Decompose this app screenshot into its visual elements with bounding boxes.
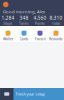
button[interactable]: Rewards [48,31,64,41]
staticText: Cards [19,37,28,41]
button[interactable]: 4,560 [32,14,48,26]
staticText: Wallet [3,37,13,41]
staticText: Finish your setup [15,91,44,97]
staticText: Steps [3,21,12,26]
button[interactable]: Transit [32,31,48,41]
staticText: Good morning, Alex [3,9,45,14]
staticText: Transit [34,37,45,41]
staticText: Total [52,21,60,26]
staticText: 348 [19,14,28,21]
staticText: Tasks [19,21,29,26]
button[interactable]: Wallet [0,31,16,41]
staticText: 4,560 [33,14,46,21]
button[interactable]: 1,284 [0,14,16,26]
button[interactable]: Cards [16,31,32,41]
staticText: Rewards [49,37,63,41]
staticText: 1,284 [1,14,14,21]
button[interactable]: 348 [16,14,32,26]
button[interactable]: 8,310 [48,14,64,26]
staticText: 8,310 [49,14,62,21]
staticText: Points [35,21,45,26]
